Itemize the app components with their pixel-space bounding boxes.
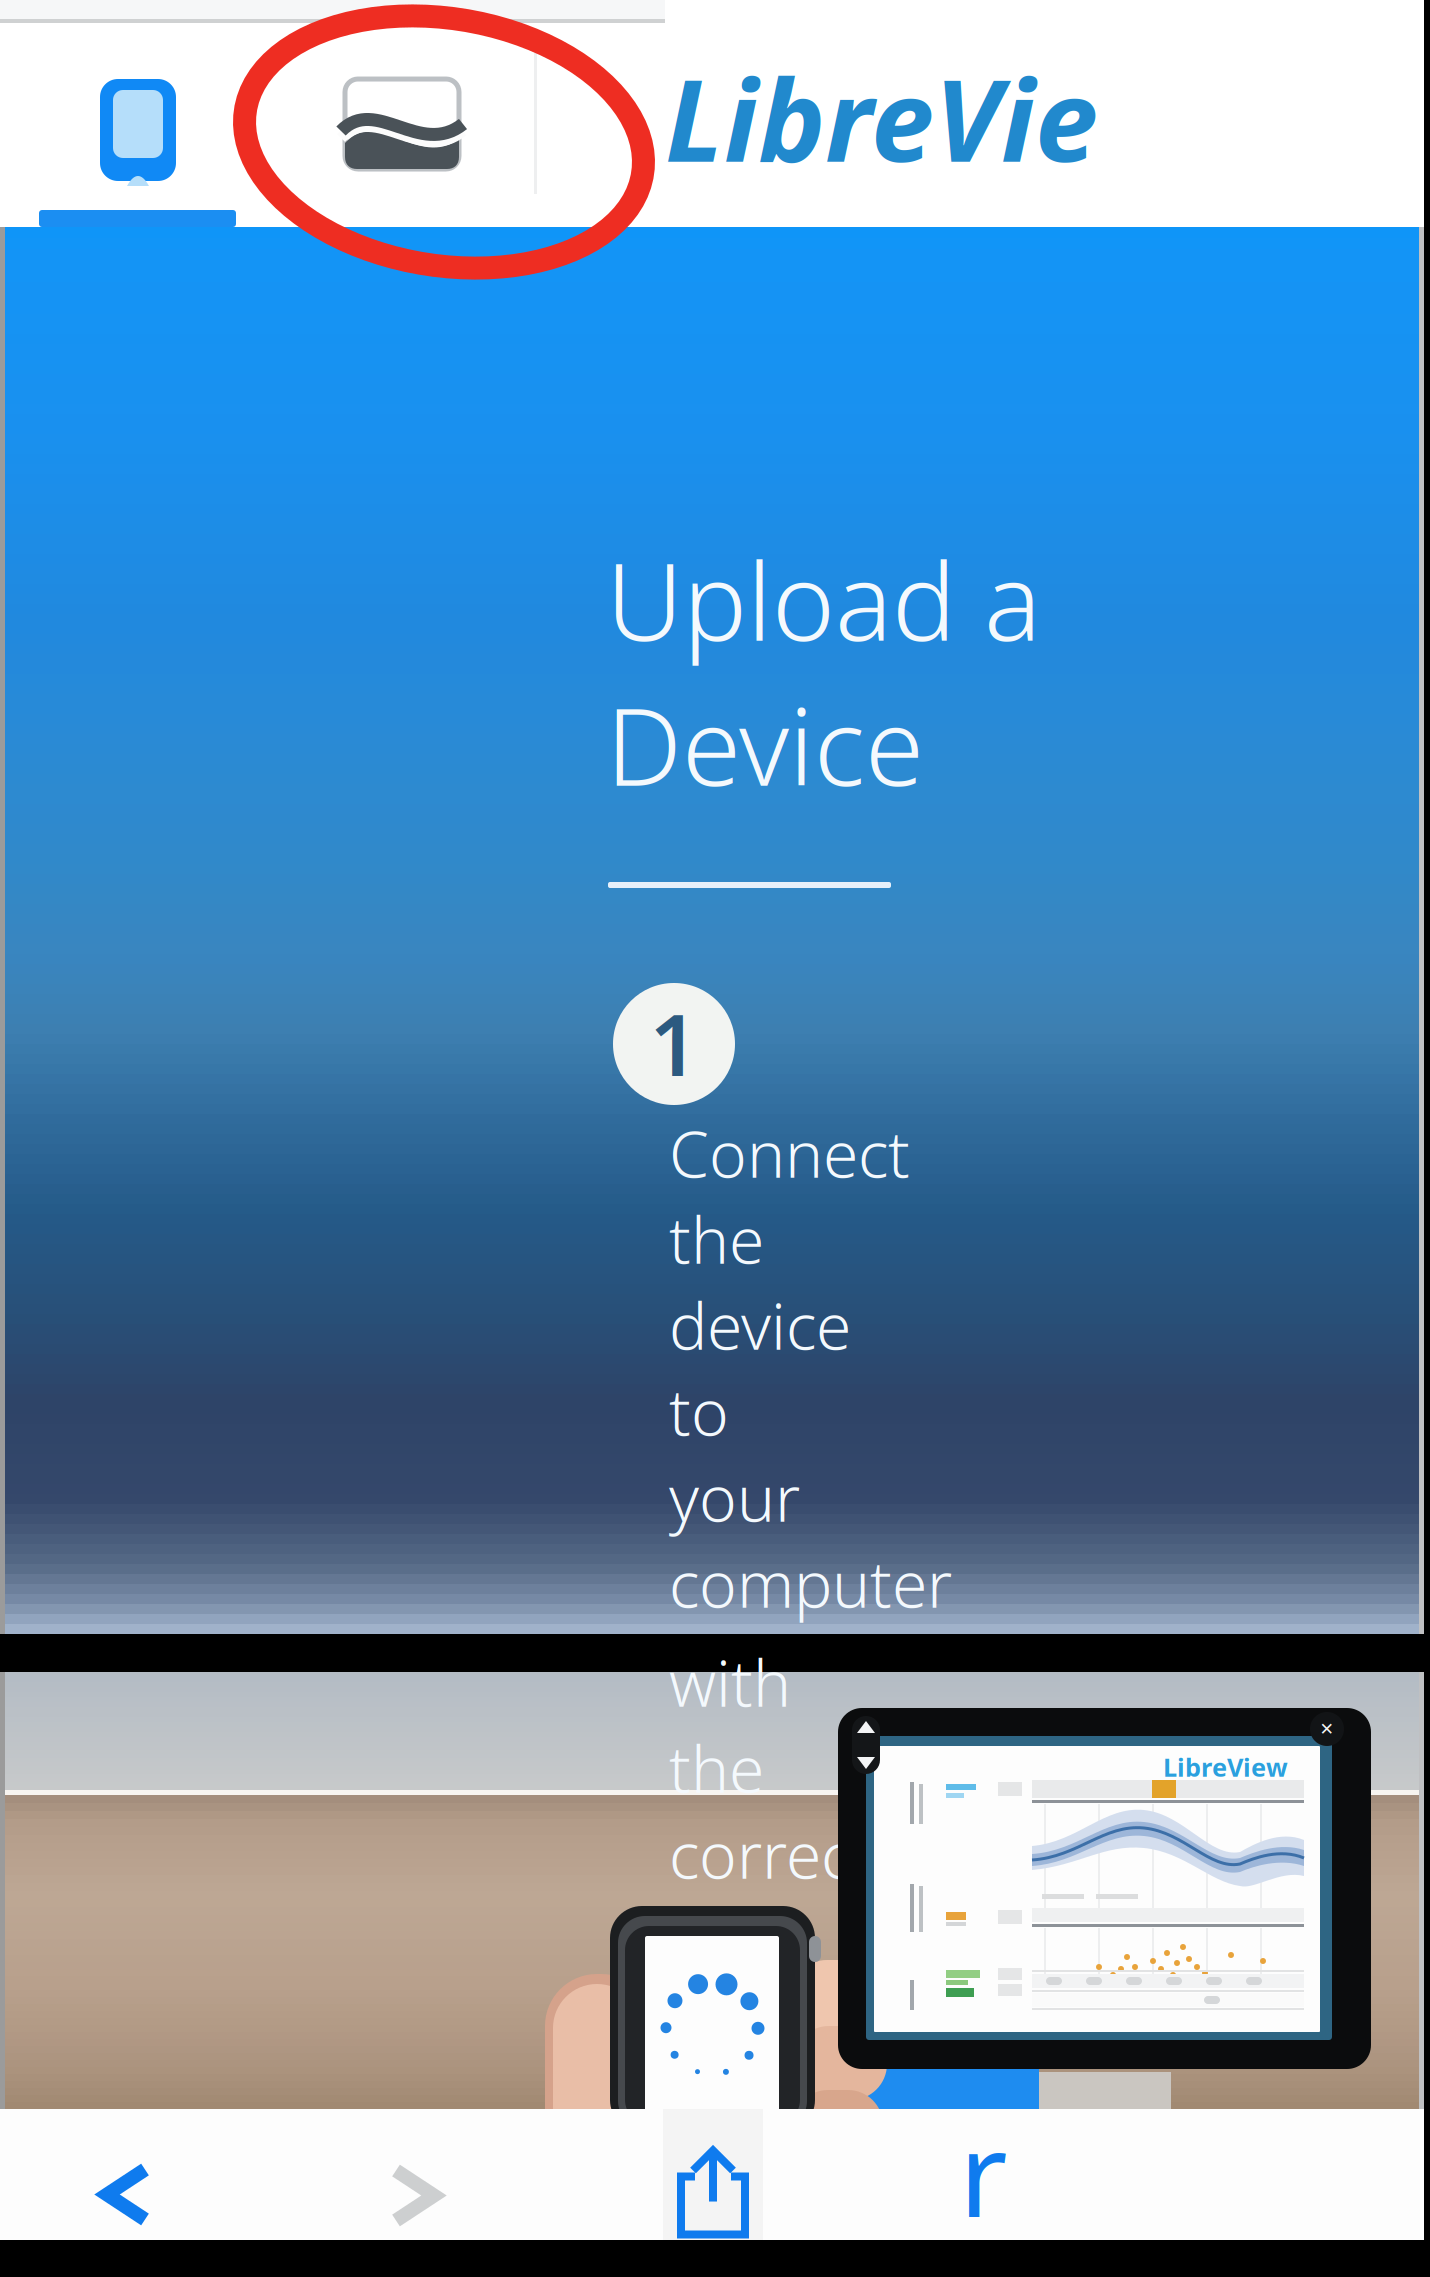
staticText: to (669, 1368, 729, 1453)
staticText: Upload a (606, 529, 1041, 670)
staticText: Connect (669, 1110, 910, 1195)
button[interactable]: Forward (315, 2130, 515, 2261)
staticText: 1 (649, 986, 698, 1100)
staticText: your (669, 1454, 800, 1539)
button[interactable]: Meter readings (20, 45, 256, 225)
staticText: Device (606, 674, 924, 815)
staticText: the (669, 1196, 764, 1281)
staticText: with (669, 1639, 791, 1724)
button[interactable]: Bookmarks (913, 2106, 1053, 2237)
staticText: device (669, 1282, 851, 1367)
button[interactable]: Glucose graph (284, 35, 520, 215)
staticText: LibreView (1163, 1750, 1288, 1784)
staticText: computer (669, 1540, 952, 1625)
staticText: correc (669, 1811, 851, 1896)
button[interactable]: Share (643, 2129, 783, 2260)
staticText: r (959, 2094, 1007, 2249)
staticText: the (669, 1725, 764, 1810)
staticText: LibreVie (665, 42, 1098, 193)
button[interactable]: Back (26, 2129, 226, 2260)
staticText: ✕ (1319, 1719, 1334, 1739)
